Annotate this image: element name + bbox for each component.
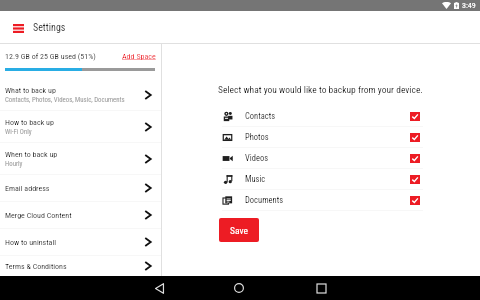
- staticText: What to back up: [5, 86, 56, 95]
- staticText: Videos: [245, 153, 269, 163]
- staticText: Terms & Conditions: [5, 262, 67, 271]
- button[interactable]: Photos: [162, 127, 480, 147]
- button[interactable]: Music: [162, 169, 480, 189]
- staticText: Hourly: [5, 160, 23, 168]
- button[interactable]: How to back up: [0, 111, 161, 142]
- button[interactable]: Contacts: [162, 106, 480, 126]
- staticText: Documents: [245, 195, 284, 205]
- button[interactable]: Add Space: [122, 52, 156, 61]
- button[interactable]: Terms & Conditions: [0, 256, 161, 276]
- staticText: Save: [230, 225, 248, 236]
- button[interactable]: Videos: [162, 148, 480, 168]
- button[interactable]: Back: [148, 277, 170, 299]
- staticText: Contacts, Photos, Videos, Music, Documen…: [5, 96, 125, 104]
- staticText: Select what you would like to backup fro…: [218, 84, 423, 95]
- staticText: Add Space: [122, 52, 156, 61]
- staticText: Contacts: [245, 111, 276, 121]
- button[interactable]: How to uninstall: [0, 229, 161, 255]
- staticText: How to back up: [5, 118, 54, 127]
- button[interactable]: When to back up: [0, 143, 161, 174]
- staticText: Music: [245, 174, 266, 184]
- button[interactable]: Save: [219, 218, 259, 242]
- button[interactable]: Documents: [162, 190, 480, 210]
- button[interactable]: Menu: [9, 19, 27, 37]
- staticText: 3:49: [462, 1, 476, 10]
- staticText: How to uninstall: [5, 238, 57, 247]
- button[interactable]: Merge Cloud Content: [0, 202, 161, 228]
- staticText: Settings: [33, 22, 66, 34]
- button[interactable]: Email address: [0, 175, 161, 201]
- button[interactable]: Recent apps: [310, 277, 332, 299]
- staticText: Merge Cloud Content: [5, 211, 72, 220]
- button[interactable]: What to back up: [0, 79, 161, 110]
- staticText: When to back up: [5, 150, 58, 159]
- staticText: Wi-Fi Only: [5, 128, 32, 136]
- staticText: Email address: [5, 184, 50, 193]
- staticText: Photos: [245, 132, 269, 142]
- staticText: 12.9 GB of 25 GB used (51%): [5, 52, 96, 61]
- button[interactable]: Home: [228, 277, 250, 299]
